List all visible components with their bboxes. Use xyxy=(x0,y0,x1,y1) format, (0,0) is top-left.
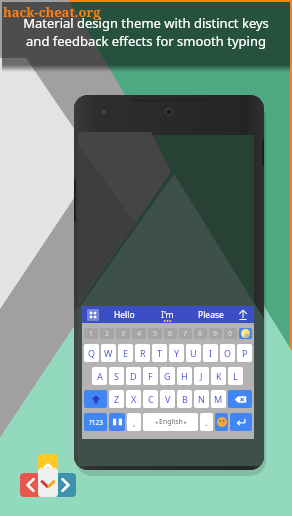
button[interactable]: , xyxy=(127,413,141,431)
button[interactable]: . xyxy=(200,413,213,431)
staticText: 2 xyxy=(105,329,110,339)
button[interactable]: I xyxy=(203,344,218,362)
staticText: D xyxy=(130,370,137,382)
button[interactable]: E xyxy=(118,344,133,362)
staticText: W xyxy=(104,347,113,359)
button[interactable]: G xyxy=(160,367,175,385)
staticText: X xyxy=(131,393,137,405)
staticText: 6 xyxy=(168,329,173,339)
button[interactable]: Y xyxy=(169,344,184,362)
button[interactable]: Q xyxy=(84,344,99,362)
staticText: . xyxy=(205,416,208,428)
staticText: 8 xyxy=(198,329,203,339)
button[interactable]: Expand suggestions xyxy=(232,306,254,323)
staticText: H xyxy=(181,370,188,382)
staticText: Z xyxy=(114,393,120,405)
staticText: hack-cheat.org xyxy=(3,3,101,21)
staticText: R xyxy=(140,347,146,359)
button[interactable]: Enter xyxy=(230,413,252,431)
staticText: N xyxy=(198,393,205,405)
button[interactable]: W xyxy=(101,344,116,362)
button[interactable]: Please xyxy=(189,306,232,323)
button[interactable]: H xyxy=(177,367,192,385)
button[interactable]: V xyxy=(160,390,175,408)
button[interactable]: L xyxy=(228,367,243,385)
button[interactable]: 4 xyxy=(132,328,146,339)
staticText: L xyxy=(233,370,238,382)
staticText: ?123 xyxy=(89,418,103,427)
button[interactable]: Shift xyxy=(84,390,107,408)
button[interactable]: 2 xyxy=(100,328,114,339)
staticText: T xyxy=(157,347,163,359)
button[interactable]: P xyxy=(237,344,252,362)
button[interactable]: 5 xyxy=(148,328,162,339)
button[interactable]: ◂ xyxy=(143,413,198,431)
button[interactable]: Switch language xyxy=(109,413,125,431)
staticText: 4 xyxy=(137,329,142,339)
staticText: Q xyxy=(88,347,96,359)
button[interactable]: K xyxy=(211,367,226,385)
staticText: 1 xyxy=(89,329,94,339)
staticText: , xyxy=(133,416,136,428)
button[interactable]: Emoji xyxy=(215,413,228,431)
button[interactable]: 1 xyxy=(84,328,98,339)
button[interactable]: A xyxy=(92,367,107,385)
button[interactable]: Symbols xyxy=(84,413,107,431)
staticText: G xyxy=(164,370,171,382)
staticText: ▸ xyxy=(183,419,187,426)
button[interactable]: O xyxy=(220,344,235,362)
staticText: 9 xyxy=(213,329,218,339)
staticText: Y xyxy=(174,347,180,359)
button[interactable]: X xyxy=(126,390,141,408)
staticText: ◂ xyxy=(155,419,159,426)
staticText: 0 xyxy=(228,329,233,339)
button[interactable]: Z xyxy=(109,390,124,408)
staticText: F xyxy=(148,370,153,382)
staticText: A xyxy=(97,370,103,382)
button[interactable]: I'm xyxy=(146,306,189,323)
staticText: 3 xyxy=(121,329,126,339)
staticText: O xyxy=(224,347,232,359)
staticText: I'm xyxy=(161,309,174,321)
staticText: C xyxy=(148,393,154,405)
staticText: J xyxy=(200,370,203,382)
button[interactable]: U xyxy=(186,344,201,362)
staticText: E xyxy=(123,347,129,359)
button[interactable]: Backspace xyxy=(228,390,252,408)
button[interactable]: D xyxy=(126,367,141,385)
button[interactable]: N xyxy=(194,390,209,408)
button[interactable]: J xyxy=(194,367,209,385)
button[interactable]: C xyxy=(143,390,158,408)
staticText: K xyxy=(216,370,222,382)
button[interactable]: Keyboard settings xyxy=(239,328,252,339)
button[interactable]: F xyxy=(143,367,158,385)
button[interactable]: 8 xyxy=(194,328,207,339)
staticText: 5 xyxy=(153,329,158,339)
staticText: Material design theme with distinct keys xyxy=(2,14,290,32)
button[interactable]: M xyxy=(211,390,226,408)
staticText: Please xyxy=(198,309,224,321)
button[interactable]: 0 xyxy=(224,328,237,339)
button[interactable]: App logo xyxy=(20,454,76,500)
staticText: 7 xyxy=(183,329,188,339)
staticText: V xyxy=(165,393,171,405)
staticText: B xyxy=(182,393,188,405)
button[interactable]: 6 xyxy=(164,328,177,339)
button[interactable]: 7 xyxy=(179,328,192,339)
staticText: U xyxy=(190,347,197,359)
button[interactable]: Keyboard menu xyxy=(82,306,103,323)
staticText: and feedback effects for smooth typing xyxy=(2,32,290,50)
staticText: M xyxy=(214,393,223,405)
button[interactable]: T xyxy=(152,344,167,362)
staticText: P xyxy=(242,347,248,359)
button[interactable]: 3 xyxy=(116,328,130,339)
button[interactable]: 9 xyxy=(209,328,222,339)
staticText: S xyxy=(114,370,119,382)
staticText: English xyxy=(159,417,183,427)
button[interactable]: S xyxy=(109,367,124,385)
button[interactable]: Hello xyxy=(103,306,146,323)
staticText: Hello xyxy=(114,309,135,321)
button[interactable]: R xyxy=(135,344,150,362)
button[interactable]: B xyxy=(177,390,192,408)
staticText: I xyxy=(209,347,213,359)
